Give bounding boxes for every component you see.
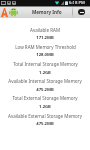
staticText: 128.0MB (36, 52, 54, 58)
staticText: Available Internal Storage Memory (8, 78, 82, 84)
staticText: 6:18 PM (69, 0, 85, 6)
staticText: 1.2GB (39, 104, 51, 110)
staticText: Memory Info (32, 9, 62, 15)
staticText: Total Internal Storage Memory (13, 61, 78, 67)
staticText: Low RAM Memory Threshold (15, 44, 76, 50)
staticText: 171.2MB (36, 35, 54, 41)
staticText: Available External Storage Memory (8, 113, 82, 119)
staticText: Available RAM (30, 27, 60, 33)
staticText: 475.2MB (36, 87, 54, 93)
staticText: 1.2GB (39, 70, 51, 76)
staticText: Total External Storage Memory (12, 95, 78, 101)
button[interactable]: App home (0, 6, 20, 18)
staticText: 475.2MB (36, 121, 54, 127)
button[interactable]: More options (73, 6, 90, 18)
